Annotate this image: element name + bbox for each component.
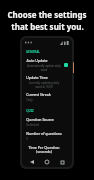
staticText: Number of questions <box>26 131 62 136</box>
staticText: GENERAL <box>26 50 40 54</box>
button[interactable]: Question Source <box>25 115 69 129</box>
staticText: Unlimited <box>26 123 39 127</box>
button[interactable]: Number of questions <box>25 129 69 143</box>
button[interactable]: Back <box>27 157 37 167</box>
button[interactable]: Home <box>42 157 52 167</box>
button[interactable]: Recents <box>57 157 67 167</box>
button[interactable]: Update Time <box>25 73 69 90</box>
staticText: Time Per Question (seconds) <box>26 145 62 154</box>
button[interactable]: Current Streak <box>25 90 69 104</box>
staticText: Auto Update <box>26 58 48 63</box>
staticText: QUIZ <box>26 109 34 113</box>
button[interactable]: Time Per Question (seconds) <box>25 143 69 157</box>
staticText: Currently updating daily word at 10:00 <box>26 81 62 88</box>
staticText: Update Time <box>26 75 48 80</box>
staticText: Choose the settings <box>7 9 87 20</box>
other: Enabled <box>64 63 68 67</box>
staticText: Daily <box>26 98 33 102</box>
button[interactable]: Auto Update <box>25 56 69 73</box>
staticText: that best suit you. <box>11 21 84 32</box>
staticText: Current Streak <box>26 92 51 97</box>
staticText: 5 <box>26 137 28 141</box>
staticText: Automatically update daily word <box>26 64 62 71</box>
staticText: Question Source <box>26 117 54 122</box>
